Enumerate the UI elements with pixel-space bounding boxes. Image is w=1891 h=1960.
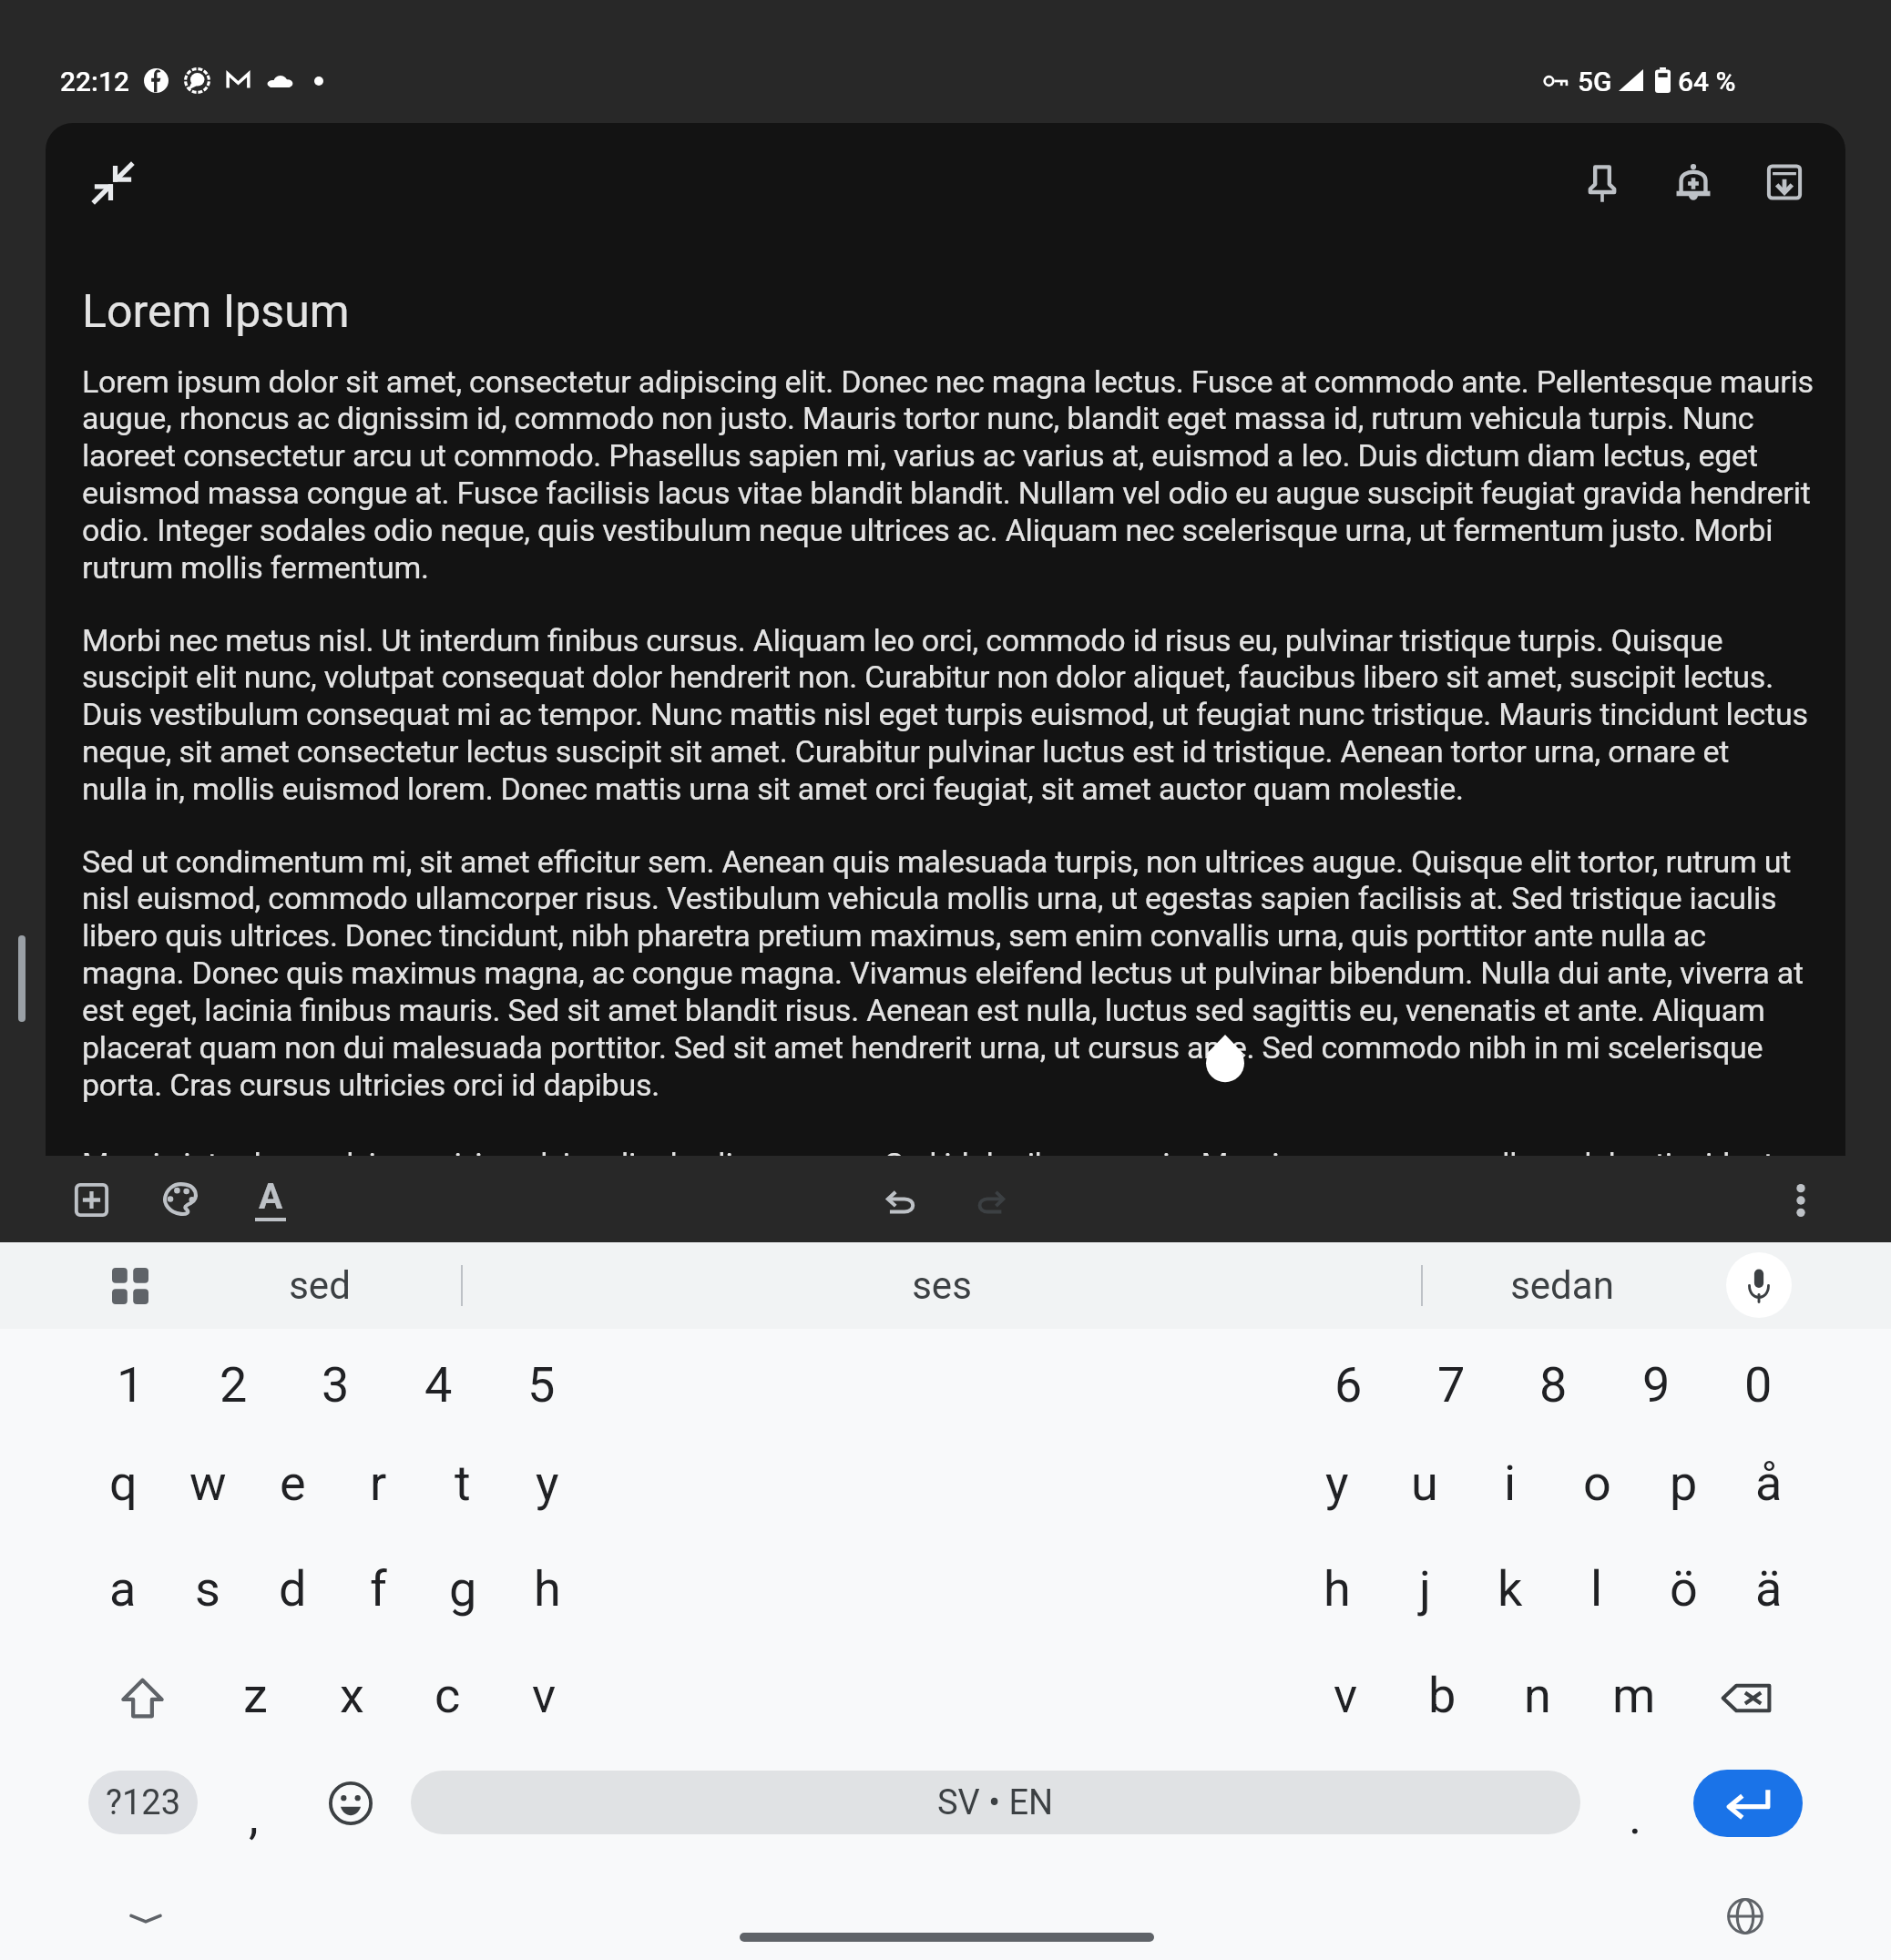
button[interactable]: sed [178,1242,462,1329]
button[interactable]: g [412,1537,514,1639]
staticText: r [370,1455,387,1512]
button[interactable]: Redo [946,1158,1034,1244]
staticText: d [279,1560,307,1618]
staticText: k [1497,1560,1523,1618]
button[interactable]: Archive [1741,138,1828,226]
staticText: p [1670,1455,1698,1512]
button[interactable]: 6 [1297,1333,1399,1435]
button[interactable]: 8 [1502,1333,1604,1435]
button[interactable]: ö [1632,1537,1734,1639]
staticText: e [280,1455,306,1512]
staticText: v [532,1667,557,1724]
staticText: 7 [1437,1356,1466,1414]
button[interactable]: 5 [490,1333,592,1435]
button[interactable]: a [72,1537,174,1639]
button[interactable]: Keyboard menu [94,1250,167,1322]
button[interactable]: b [1391,1644,1493,1746]
button[interactable]: u [1374,1432,1476,1534]
button[interactable]: Backspace [1695,1647,1797,1749]
staticText: Sed ut condimentum mi, sit amet efficitu… [82,843,1804,1103]
staticText: 0 [1744,1356,1773,1414]
button[interactable]: å [1718,1432,1820,1534]
button[interactable]: x [301,1644,403,1746]
staticText: . [1629,1788,1642,1845]
button[interactable]: ses [462,1242,1422,1329]
button[interactable]: f [327,1537,429,1639]
button[interactable]: Enter [1693,1770,1803,1837]
staticText: t [455,1455,471,1512]
button[interactable]: Voice input [1726,1252,1792,1318]
button[interactable]: 1 [79,1333,181,1435]
button[interactable]: Change language [1694,1865,1796,1960]
button[interactable]: d [241,1537,343,1639]
button[interactable]: z [204,1644,306,1746]
button[interactable]: t [412,1432,514,1534]
button[interactable]: Hide keyboard [95,1867,197,1960]
button[interactable]: Reminder [1650,139,1737,227]
button[interactable]: m [1583,1644,1685,1746]
button[interactable]: More options [1757,1157,1845,1243]
button[interactable]: sedan [1422,1242,1702,1329]
staticText: 8 [1539,1356,1568,1414]
button[interactable]: Format text [227,1155,314,1241]
button[interactable]: , [202,1765,304,1867]
button[interactable]: Colour [137,1156,224,1242]
button[interactable]: 9 [1605,1333,1707,1435]
button[interactable]: s [157,1537,259,1639]
button[interactable]: k [1459,1537,1561,1639]
staticText: g [449,1560,477,1618]
staticText: , [249,1788,259,1845]
staticText: f [370,1560,387,1618]
button[interactable]: ?123 [88,1771,198,1834]
button[interactable]: j [1374,1537,1476,1639]
button[interactable]: e [241,1432,343,1534]
button[interactable]: o [1546,1432,1648,1534]
button[interactable]: Undo [857,1158,945,1244]
staticText: SV • EN [937,1782,1054,1823]
staticText: z [243,1667,268,1724]
button[interactable]: h [496,1537,598,1639]
staticText: u [1411,1455,1438,1512]
staticText: 2 [220,1356,248,1414]
button[interactable]: h [1286,1537,1388,1639]
button[interactable]: 4 [387,1333,489,1435]
staticText: m [1612,1667,1656,1724]
button[interactable]: q [72,1432,174,1534]
button[interactable]: y [496,1432,598,1534]
staticText: h [1324,1560,1351,1618]
button[interactable]: 7 [1400,1333,1502,1435]
button[interactable]: v [1294,1644,1396,1746]
staticText: 3 [322,1356,350,1414]
button[interactable]: Collapse [69,139,157,227]
button[interactable]: i [1459,1432,1561,1534]
button[interactable]: 3 [284,1333,386,1435]
button[interactable]: . [1584,1765,1686,1867]
staticText: 64 % [1678,66,1736,97]
staticText: 1 [117,1356,145,1414]
staticText: b [1428,1667,1457,1724]
button[interactable]: Lorem ipsum dolor sit amet, consectetur … [82,363,1826,1156]
staticText: Morbi nec metus nisl. Ut interdum finibu… [82,622,1808,807]
button[interactable]: w [157,1432,259,1534]
button[interactable]: Pin [1559,139,1646,227]
button[interactable]: Emoji [300,1752,402,1854]
button[interactable]: SV • EN [411,1771,1580,1834]
button[interactable]: ä [1718,1537,1820,1639]
button[interactable]: c [396,1644,498,1746]
staticText: ä [1755,1560,1783,1618]
button[interactable]: Add [47,1157,135,1243]
staticText: v [1334,1667,1358,1724]
staticText: Lorem Ipsum [82,285,350,339]
staticText: q [109,1455,138,1512]
button[interactable]: l [1546,1537,1648,1639]
button[interactable]: 2 [182,1333,284,1435]
button[interactable]: v [493,1644,595,1746]
button[interactable]: 0 [1707,1333,1809,1435]
button[interactable]: r [327,1432,429,1534]
button[interactable]: n [1487,1644,1589,1746]
button[interactable]: Shift [91,1648,193,1750]
button[interactable]: y [1286,1432,1388,1534]
button[interactable]: p [1632,1432,1734,1534]
staticText: y [536,1455,559,1512]
staticText: h [534,1560,561,1618]
